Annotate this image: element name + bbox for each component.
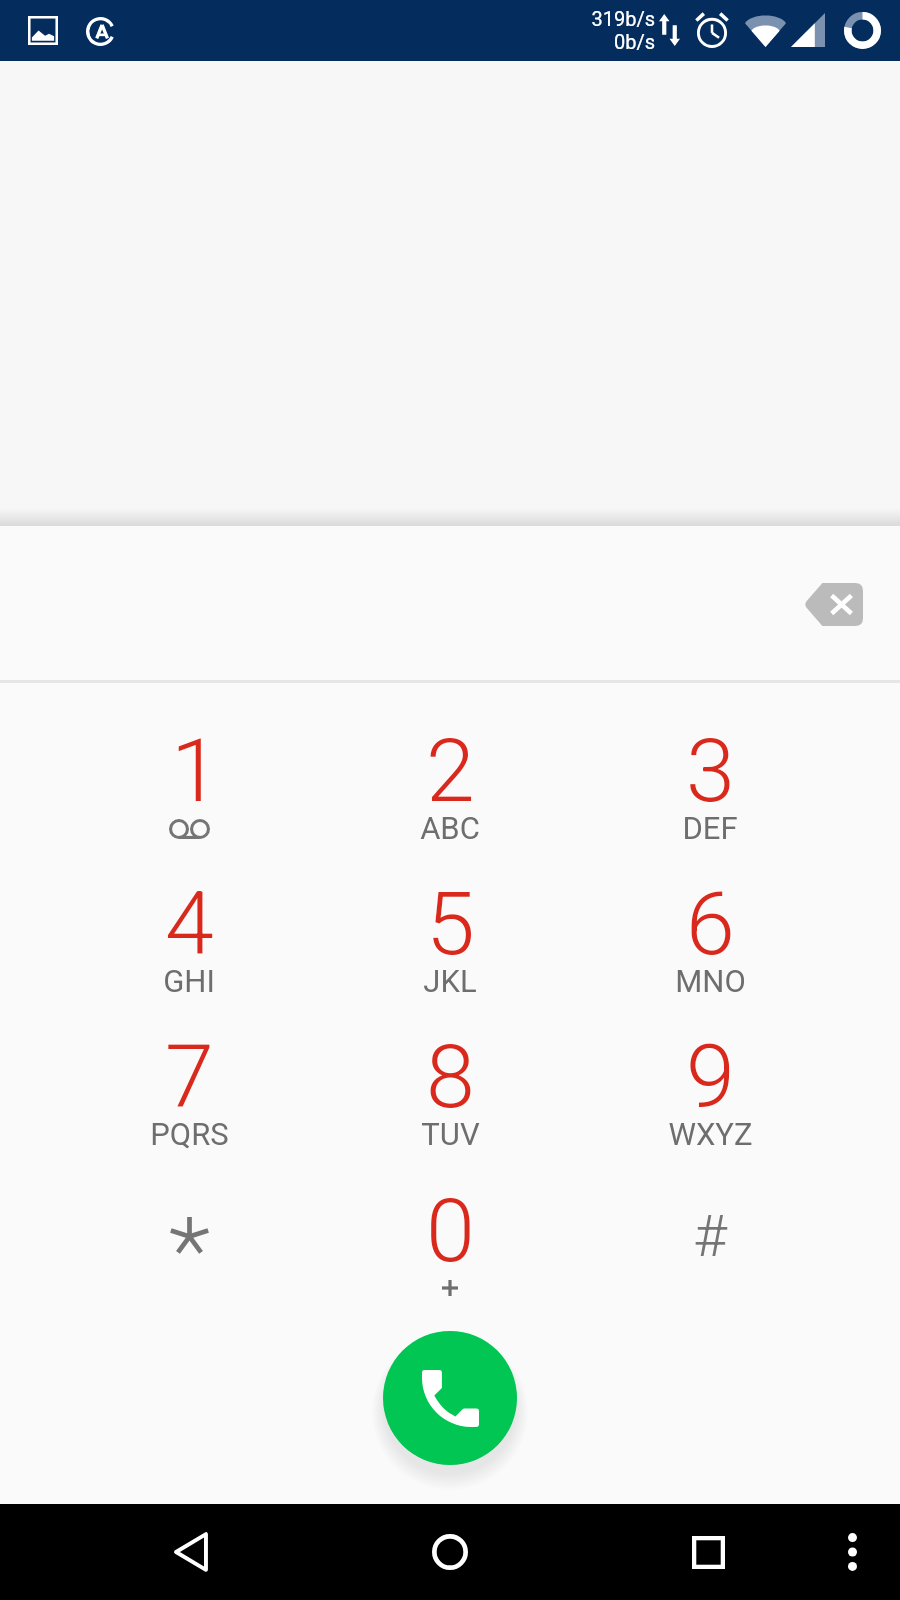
button[interactable]: # (580, 1152, 840, 1306)
button[interactable]: 3 (580, 692, 840, 846)
button[interactable]: 7 (59, 998, 319, 1152)
staticText: 319b/s (591, 7, 655, 30)
button[interactable]: 8 (320, 998, 580, 1152)
staticText: GHI (163, 963, 215, 999)
staticText: 6 (686, 872, 735, 975)
staticText: 9 (686, 1025, 735, 1128)
staticText: 1 (171, 719, 220, 822)
staticText: WXYZ (668, 1116, 753, 1152)
button[interactable]: 1 (59, 692, 319, 846)
staticText: MNO (675, 963, 746, 999)
staticText: # (693, 1202, 727, 1270)
staticText: 8 (426, 1025, 475, 1128)
button[interactable]: 2 (320, 692, 580, 846)
staticText: 4 (165, 872, 214, 975)
button[interactable]: Backspace (795, 565, 873, 643)
staticText: JKL (423, 963, 477, 999)
staticText: 2 (426, 719, 475, 822)
button[interactable]: Recent apps (660, 1504, 756, 1600)
staticText: ABC (420, 810, 480, 846)
button[interactable]: 6 (580, 845, 840, 999)
button[interactable]: 5 (320, 845, 580, 999)
button[interactable]: 9 (580, 998, 840, 1152)
staticText: DEF (682, 810, 738, 846)
staticText: TUV (421, 1116, 480, 1152)
button[interactable]: Home (402, 1504, 498, 1600)
staticText: 5 (426, 872, 475, 975)
button[interactable]: Call (383, 1331, 517, 1465)
staticText: 0 (426, 1179, 475, 1282)
staticText: 0b/s (613, 30, 655, 53)
button[interactable]: Back (143, 1504, 239, 1600)
staticText: 3 (686, 719, 735, 822)
button[interactable]: 0 (320, 1152, 580, 1306)
button[interactable]: 4 (59, 845, 319, 999)
staticText: PQRS (150, 1116, 229, 1152)
button[interactable]: More options (812, 1504, 892, 1600)
staticText: 7 (165, 1025, 214, 1128)
button[interactable] (59, 1152, 319, 1306)
